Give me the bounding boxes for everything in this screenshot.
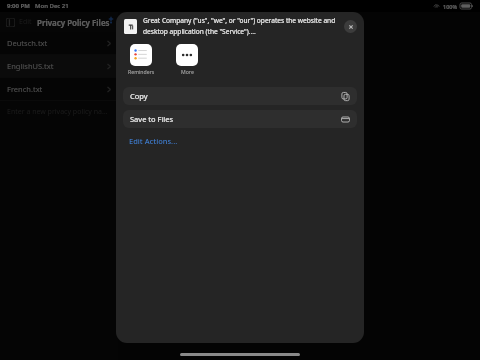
button[interactable]: Toggle sidebar [6,18,15,27]
staticText: Reminders [128,68,155,75]
staticText: Edit Actions... [129,136,178,146]
staticText: Privacy Policy Files [37,17,110,28]
staticText: Copy [130,91,148,101]
staticText: Great Company is managed through Free Pr… [134,105,323,115]
button[interactable]: Deutsch.txt [0,32,118,54]
button[interactable]: Enter a new privacy policy name (eg... [0,101,118,123]
staticText: Edit [19,17,32,27]
staticText: Preview [134,23,161,33]
staticText: 9:00 PM [7,2,30,10]
staticText: We use your data to provide and improve … [134,122,358,132]
button[interactable]: Copy [123,87,357,105]
staticText: More [181,68,194,75]
button[interactable]: Close [344,20,357,33]
staticText: choices you have associated with that da… [134,93,354,103]
staticText: 100% [443,3,458,10]
button[interactable]: Great Company ("us", "we", or "our") ope… [116,12,364,40]
staticText: Mon Dec 21 [35,2,69,10]
staticText: EnglishUS.txt [7,61,54,71]
button[interactable]: Reminders [126,44,156,75]
staticText: Service, you agree to the collection and… [134,134,339,144]
staticText: This page informs you of our policies re… [134,69,359,79]
staticText: Deutsch.txt [7,38,48,48]
staticText: Great Company ("us", "we", or "our") ope… [143,16,339,25]
button[interactable]: Edit Actions... [116,133,364,148]
staticText: French.txt [7,84,43,94]
staticText: desktop application (the "Service").... [143,27,256,36]
button[interactable]: More [172,44,202,75]
staticText: Enter a new privacy policy name (eg... [7,107,111,117]
button[interactable]: EnglishUS.txt [0,55,118,77]
staticText: Save to Files [130,114,174,124]
staticText: Great Company ("us", "we", or "our") ope… [134,40,357,50]
button[interactable]: Save to Files [123,110,357,128]
button[interactable]: Add [110,18,112,27]
staticText: and disclosure of personal data when you… [134,81,356,91]
button[interactable]: Edit [19,17,32,27]
staticText: Wonderful App mobile/desktop application… [134,52,330,62]
button[interactable]: French.txt [0,78,118,100]
